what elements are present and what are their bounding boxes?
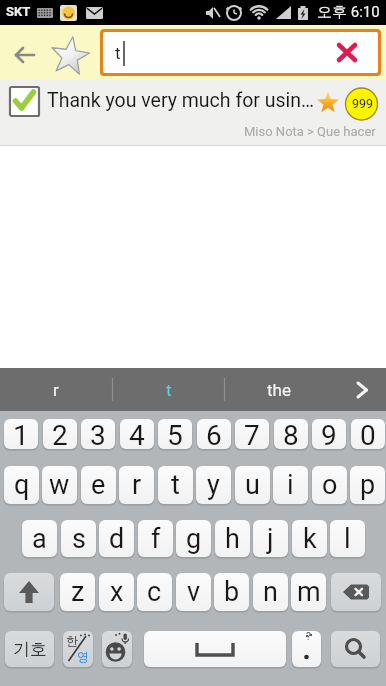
button[interactable]: e	[81, 466, 116, 504]
button[interactable]: 4	[120, 419, 154, 449]
button[interactable]: i	[273, 466, 308, 504]
button[interactable]: v	[176, 573, 211, 611]
button[interactable]: t	[158, 466, 193, 504]
button[interactable]: x	[99, 573, 134, 611]
button[interactable]: 1	[4, 419, 38, 449]
staticText: t	[115, 43, 121, 63]
staticText: l	[344, 523, 351, 555]
staticText: b	[224, 576, 240, 608]
button[interactable]: 6	[197, 419, 231, 449]
staticText: a	[32, 523, 47, 555]
staticText: 기호	[13, 639, 47, 660]
button[interactable]: 0	[351, 419, 385, 449]
staticText: c	[147, 576, 162, 608]
staticText: s	[72, 523, 86, 555]
button[interactable]: c	[137, 573, 172, 611]
button[interactable]: u	[235, 466, 270, 504]
staticText: 영	[77, 649, 89, 664]
button[interactable]: f	[138, 520, 173, 557]
staticText: e	[91, 469, 106, 501]
staticText: j	[267, 523, 274, 555]
button[interactable]: a	[22, 520, 57, 557]
staticText: r	[53, 380, 59, 400]
staticText: 1	[13, 419, 29, 449]
button[interactable]: 기호	[5, 631, 54, 667]
button[interactable]: 3	[81, 419, 115, 449]
staticText: t	[171, 469, 180, 501]
staticText: 6	[206, 419, 222, 449]
staticText: 2	[52, 419, 68, 449]
staticText: ?	[306, 631, 311, 643]
staticText: x	[110, 576, 124, 608]
staticText: f	[151, 523, 161, 555]
button[interactable]: the	[225, 368, 333, 411]
button[interactable]	[4, 573, 54, 611]
staticText: v	[187, 576, 201, 608]
staticText: 오후 6:10	[317, 3, 380, 22]
staticText: SKT	[6, 4, 31, 19]
button[interactable]: r	[119, 466, 154, 504]
button[interactable]: w	[42, 466, 77, 504]
button[interactable]	[331, 631, 380, 667]
staticText: k	[303, 523, 317, 555]
button[interactable]: k	[292, 520, 327, 557]
staticText: i	[287, 469, 294, 501]
button[interactable]: b	[214, 573, 249, 611]
button[interactable]: g	[176, 520, 211, 557]
button[interactable]	[144, 631, 286, 667]
button[interactable]	[50, 36, 90, 76]
button[interactable]: 5	[158, 419, 192, 449]
staticText: r	[132, 469, 142, 501]
staticText: d	[109, 523, 125, 555]
staticText: 4	[129, 419, 145, 449]
staticText: h	[225, 523, 240, 555]
staticText: u	[245, 469, 260, 501]
button[interactable]: 7	[235, 419, 269, 449]
staticText: y	[207, 469, 220, 501]
button[interactable]: Thank you very much for usin…	[0, 80, 386, 146]
button[interactable]: o	[312, 466, 347, 504]
staticText: o	[322, 469, 338, 501]
staticText: w	[49, 469, 70, 501]
button[interactable]: p	[350, 466, 385, 504]
button[interactable]	[102, 631, 132, 667]
staticText: Miso Nota > Que hacer	[244, 124, 376, 139]
staticText: 7	[244, 419, 260, 449]
staticText: 5	[167, 419, 183, 449]
button[interactable]: 한	[63, 631, 93, 667]
staticText: t	[166, 380, 172, 400]
staticText: z	[71, 576, 85, 608]
staticText: Thank you very much for usin…	[47, 89, 315, 112]
button[interactable]: z	[60, 573, 95, 611]
staticText: the	[267, 380, 291, 400]
button[interactable]: s	[61, 520, 96, 557]
button[interactable]	[331, 573, 381, 611]
button[interactable]: r	[0, 368, 112, 411]
button[interactable]: t	[113, 368, 224, 411]
button[interactable]: j	[253, 520, 288, 557]
staticText: 3	[90, 419, 106, 449]
button[interactable]: l	[330, 520, 365, 557]
button[interactable]: q	[4, 466, 39, 504]
staticText: g	[186, 523, 202, 555]
button[interactable]	[8, 40, 42, 70]
button[interactable]	[340, 368, 386, 411]
button[interactable]	[292, 631, 321, 667]
button[interactable]: d	[99, 520, 134, 557]
staticText: 한	[66, 633, 78, 648]
staticText: m	[297, 576, 321, 608]
staticText: n	[263, 576, 278, 608]
button[interactable]: y	[196, 466, 231, 504]
button[interactable]: t	[103, 32, 378, 73]
button[interactable]: n	[253, 573, 288, 611]
button[interactable]: 8	[274, 419, 308, 449]
staticText: 0	[360, 419, 376, 449]
button[interactable]: 2	[43, 419, 77, 449]
staticText: 999	[352, 96, 374, 111]
button[interactable]: h	[215, 520, 250, 557]
staticText: p	[360, 469, 376, 501]
button[interactable]: 9	[312, 419, 346, 449]
button[interactable]: m	[291, 573, 326, 611]
staticText: 9	[321, 419, 337, 449]
staticText: q	[14, 469, 30, 501]
